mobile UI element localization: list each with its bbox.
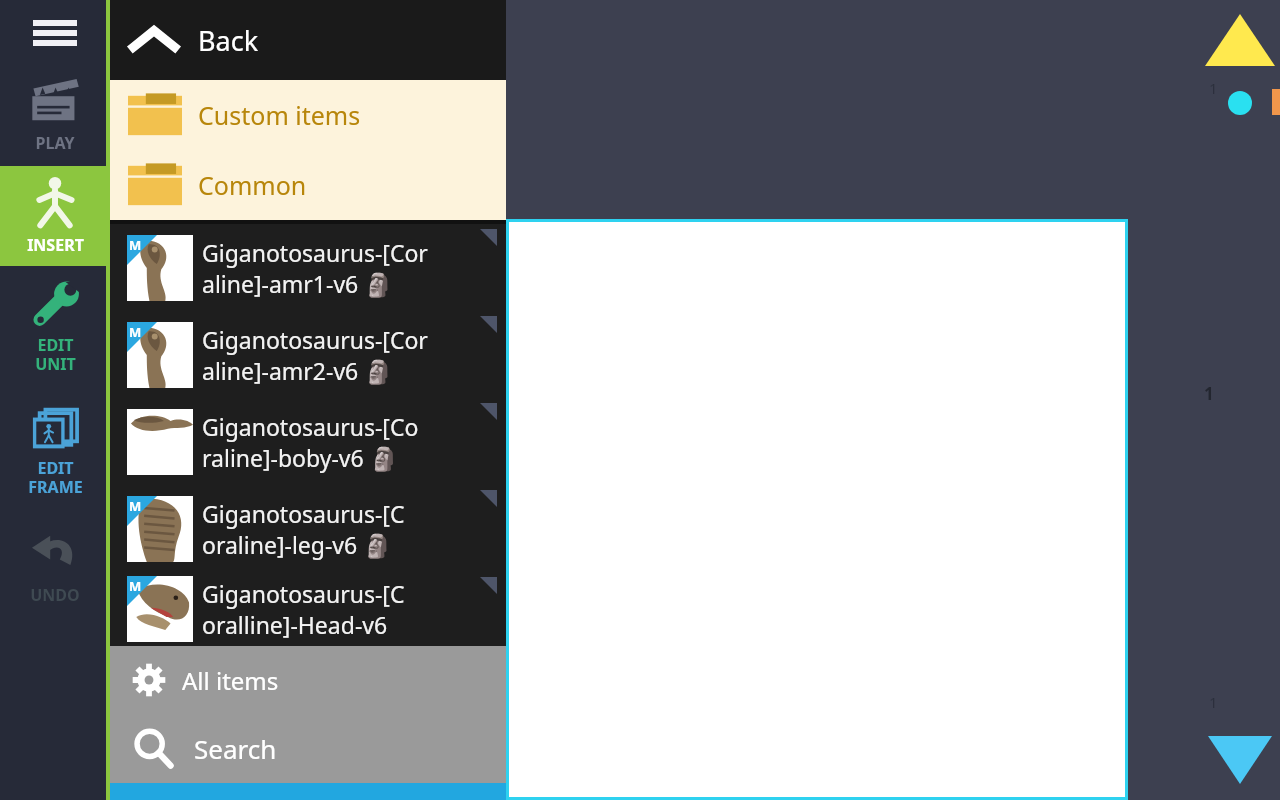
staticText: Back bbox=[198, 22, 259, 59]
staticText: Search bbox=[194, 731, 277, 766]
staticText: oraline]-leg-v6 🗿 bbox=[202, 529, 392, 560]
button[interactable]: Custom items bbox=[110, 80, 506, 150]
button[interactable]: M bbox=[110, 224, 506, 311]
staticText: Giganotosaurus-[Cor bbox=[202, 237, 428, 268]
staticText: Common bbox=[198, 168, 307, 202]
button[interactable]: Play bbox=[0, 66, 110, 166]
staticText: aline]-amr2-v6 🗿 bbox=[202, 355, 393, 386]
staticText: M bbox=[129, 497, 142, 515]
staticText: EDIT FRAME bbox=[28, 457, 83, 498]
button[interactable]: Edit frame bbox=[0, 390, 110, 514]
button[interactable]: M bbox=[110, 572, 506, 646]
button[interactable]: Back bbox=[110, 0, 506, 80]
staticText: 1 bbox=[1209, 78, 1218, 98]
button[interactable]: Common bbox=[110, 150, 506, 220]
staticText: UNDO bbox=[30, 584, 80, 606]
staticText: raline]-boby-v6 🗿 bbox=[202, 442, 399, 473]
staticText: 1 bbox=[1204, 382, 1214, 405]
staticText: M bbox=[129, 323, 142, 341]
button[interactable]: M bbox=[110, 311, 506, 398]
staticText: PLAY bbox=[35, 132, 75, 154]
button[interactable]: Edit unit bbox=[0, 266, 110, 390]
staticText: Giganotosaurus-[Cor bbox=[202, 324, 428, 355]
button[interactable]: M bbox=[110, 485, 506, 572]
staticText: Giganotosaurus-[C bbox=[202, 578, 405, 609]
button[interactable]: All items bbox=[110, 646, 506, 714]
staticText: EDIT UNIT bbox=[35, 334, 76, 375]
staticText: Giganotosaurus-[Co bbox=[202, 411, 419, 442]
button[interactable]: Menu bbox=[0, 0, 110, 66]
button[interactable]: Insert bbox=[0, 166, 110, 266]
button[interactable]: Search bbox=[110, 714, 506, 782]
staticText: M bbox=[129, 236, 142, 254]
staticText: 1 bbox=[1209, 692, 1218, 712]
staticText: Giganotosaurus-[C bbox=[202, 498, 405, 529]
staticText: oralline]-Head-v6 bbox=[202, 609, 388, 640]
button[interactable]: Giganotosaurus-[Co bbox=[110, 398, 506, 485]
staticText: aline]-amr1-v6 🗿 bbox=[202, 268, 393, 299]
staticText: M bbox=[129, 577, 142, 595]
staticText: Custom items bbox=[198, 98, 361, 132]
staticText: All items bbox=[182, 664, 279, 697]
button[interactable]: Undo bbox=[0, 514, 110, 624]
staticText: INSERT bbox=[27, 234, 84, 256]
